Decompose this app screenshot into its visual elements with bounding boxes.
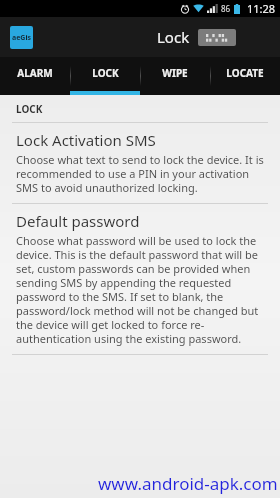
staticText: LOCK xyxy=(16,102,43,116)
button[interactable]: Lock Activation SMS xyxy=(0,123,280,203)
staticText: 11:28 xyxy=(247,1,276,16)
staticText: www.android-apk.com xyxy=(98,472,278,495)
staticText: 86 xyxy=(221,3,231,14)
staticText: aeGis xyxy=(12,33,32,43)
button[interactable]: ALARM xyxy=(0,57,70,95)
button[interactable]: aeGis home xyxy=(10,26,33,49)
staticText: LOCATE xyxy=(226,66,264,80)
staticText: Lock Activation SMS xyxy=(16,130,156,150)
button[interactable]: LOCATE xyxy=(210,57,280,95)
button[interactable]: Send lock command xyxy=(198,29,236,46)
staticText: Lock xyxy=(157,27,190,47)
staticText: LOCK xyxy=(92,66,119,80)
button[interactable]: Default password xyxy=(0,204,280,354)
button[interactable]: LOCK xyxy=(70,57,140,95)
staticText: ALARM xyxy=(17,66,53,80)
staticText: WIPE xyxy=(162,66,188,80)
staticText: Choose what password will be used to loc… xyxy=(16,233,266,346)
button[interactable]: WIPE xyxy=(140,57,210,95)
staticText: Choose what text to send to lock the dev… xyxy=(16,152,266,195)
staticText: Default password xyxy=(16,211,140,231)
